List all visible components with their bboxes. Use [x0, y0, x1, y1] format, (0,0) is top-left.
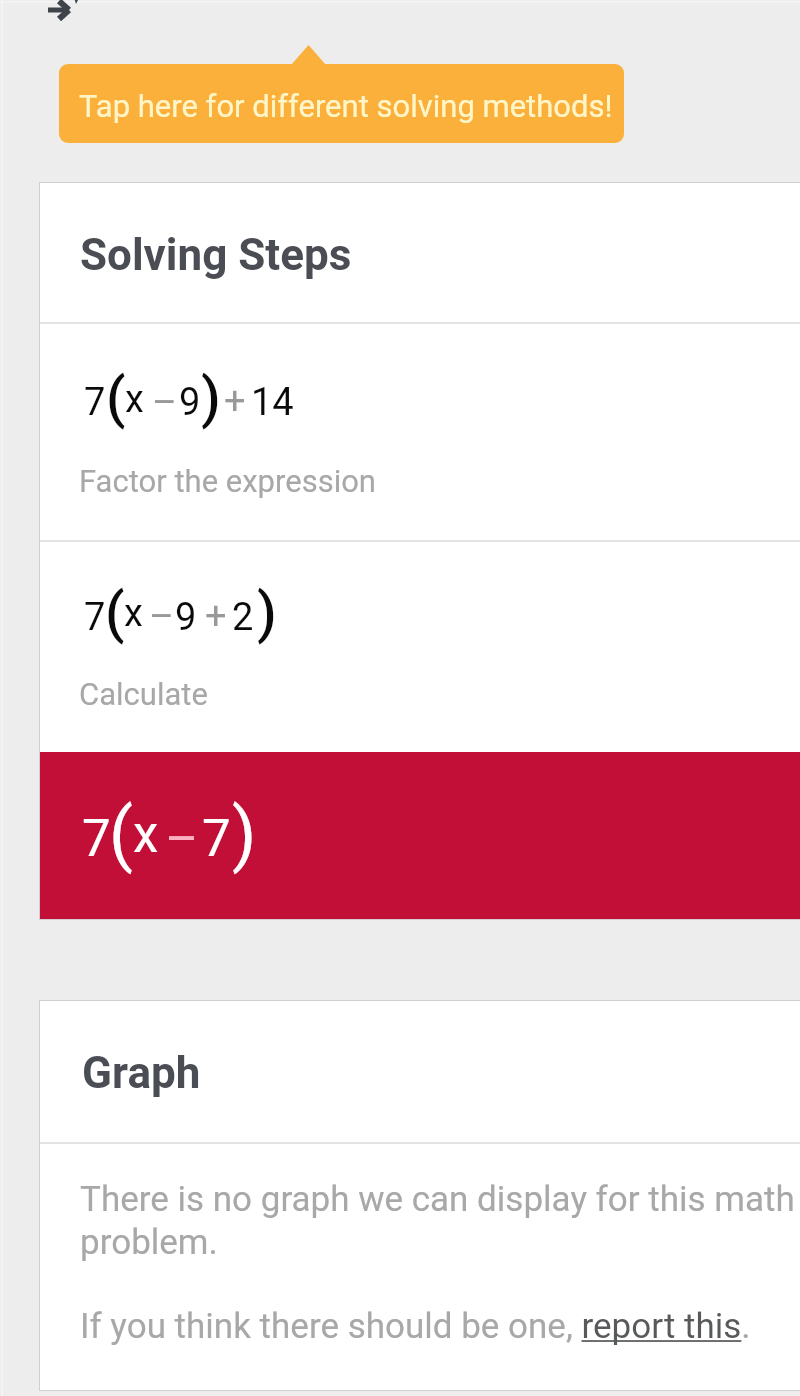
- button[interactable]: [40, 324, 800, 540]
- staticText: Solving Steps: [80, 229, 352, 281]
- button[interactable]: Graph: [40, 1001, 800, 1142]
- staticText: 7: [84, 595, 106, 640]
- staticText: x: [133, 805, 159, 865]
- button[interactable]: If you think there should be one, report…: [80, 1306, 751, 1347]
- staticText: –: [152, 380, 177, 425]
- staticText: 9: [175, 595, 197, 640]
- staticText: x: [125, 377, 144, 422]
- staticText: ): [257, 580, 277, 646]
- staticText: +: [205, 594, 227, 639]
- button[interactable]: Solving Steps: [40, 183, 800, 322]
- staticText: (: [109, 793, 133, 875]
- staticText: 14: [251, 380, 294, 425]
- staticText: If you think there should be one, report…: [80, 1306, 751, 1347]
- staticText: Tap here for different solving methods!: [79, 88, 613, 124]
- staticText: Graph: [82, 1047, 201, 1099]
- button[interactable]: Tap here for different solving methods!: [59, 64, 624, 143]
- button[interactable]: Next: [46, 0, 72, 22]
- staticText: Factor the expression: [79, 463, 376, 499]
- staticText: 2: [232, 595, 254, 640]
- staticText: –: [149, 594, 174, 639]
- staticText: x: [124, 591, 143, 636]
- staticText: 7: [202, 809, 231, 869]
- staticText: –: [165, 810, 199, 870]
- staticText: ): [201, 365, 221, 431]
- button[interactable]: [40, 752, 800, 919]
- staticText: ): [232, 793, 257, 875]
- staticText: 7: [82, 809, 111, 869]
- staticText: +: [224, 379, 246, 424]
- staticText: There is no graph we can display for thi…: [80, 1179, 800, 1263]
- staticText: (: [105, 580, 125, 646]
- staticText: Calculate: [79, 676, 208, 712]
- staticText: (: [106, 365, 126, 431]
- staticText: 9: [179, 380, 201, 425]
- staticText: 7: [84, 380, 106, 425]
- button[interactable]: [40, 542, 800, 752]
